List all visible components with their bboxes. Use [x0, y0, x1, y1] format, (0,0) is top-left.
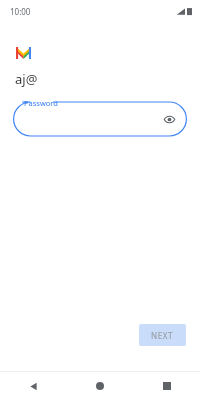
staticText: NEXT	[151, 330, 174, 341]
staticText: Password	[24, 98, 58, 108]
staticText: aj@	[15, 70, 38, 88]
button[interactable]: Home	[66, 372, 133, 400]
button[interactable]: Show password	[160, 110, 178, 128]
button[interactable]: Password	[13, 97, 187, 137]
staticText: 10:00	[10, 6, 31, 17]
button[interactable]: NEXT	[139, 324, 186, 346]
button[interactable]: Recent apps	[133, 372, 200, 400]
button[interactable]: Back	[0, 372, 66, 400]
